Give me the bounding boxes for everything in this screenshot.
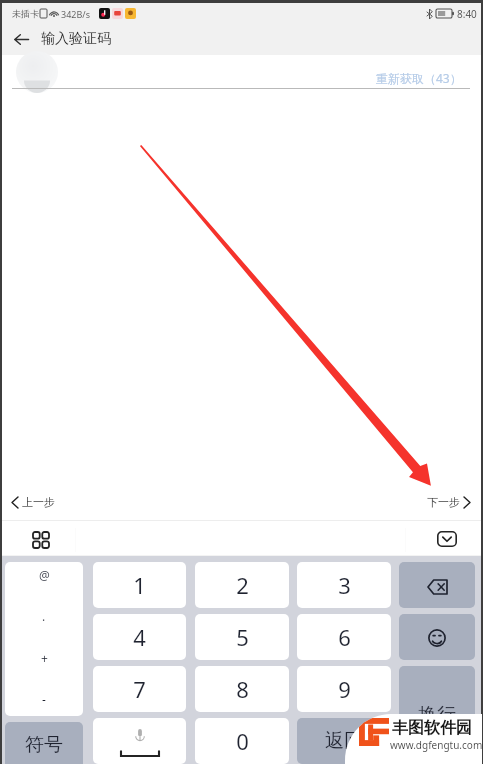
button[interactable]: [399, 562, 475, 608]
staticText: 上一步: [22, 495, 55, 509]
button[interactable]: 3: [297, 562, 391, 608]
staticText: 7: [133, 674, 146, 704]
staticText: www.dgfengtu.com: [390, 738, 482, 752]
button[interactable]: 重新获取（43）: [376, 70, 462, 86]
staticText: 返回: [325, 729, 363, 753]
staticText: 8:40: [457, 7, 477, 21]
staticText: 输入验证码: [41, 30, 111, 48]
button[interactable]: 4: [93, 614, 186, 660]
button[interactable]: 符号: [5, 722, 83, 764]
staticText: 8: [236, 674, 249, 704]
staticText: -: [42, 691, 46, 707]
button[interactable]: Hide keyboard: [434, 526, 460, 552]
staticText: 未插卡: [12, 8, 39, 19]
staticText: +: [41, 650, 48, 666]
button[interactable]: 9: [297, 666, 391, 712]
button[interactable]: 下一步: [427, 487, 470, 517]
button[interactable]: 1: [93, 562, 186, 608]
staticText: 6: [338, 622, 351, 652]
button[interactable]: Keyboard layout: [28, 527, 54, 553]
button[interactable]: [399, 614, 475, 660]
staticText: 9: [338, 674, 351, 704]
staticText: 4: [133, 622, 146, 652]
staticText: 2: [236, 570, 249, 600]
staticText: 342B/s: [61, 8, 90, 20]
button[interactable]: 2: [195, 562, 289, 608]
staticText: 1: [133, 570, 146, 600]
button[interactable]: [93, 718, 186, 764]
staticText: @: [39, 567, 50, 583]
staticText: 换行: [418, 703, 456, 727]
staticText: 5: [236, 622, 249, 652]
button[interactable]: 6: [297, 614, 391, 660]
staticText: .: [42, 608, 46, 624]
button[interactable]: 返回: [297, 718, 391, 764]
button[interactable]: 上一步: [12, 487, 55, 517]
staticText: 丰图软件园: [392, 718, 472, 738]
button[interactable]: @: [5, 562, 83, 716]
button[interactable]: 换行: [399, 666, 475, 764]
button[interactable]: Back: [10, 28, 32, 50]
button[interactable]: 7: [93, 666, 186, 712]
button[interactable]: 5: [195, 614, 289, 660]
staticText: 重新获取（43）: [376, 70, 462, 86]
staticText: 3: [338, 570, 351, 600]
staticText: 符号: [25, 733, 63, 757]
staticText: 0: [236, 726, 249, 756]
staticText: 下一步: [427, 495, 460, 509]
button[interactable]: 8: [195, 666, 289, 712]
button[interactable]: 0: [195, 718, 289, 764]
